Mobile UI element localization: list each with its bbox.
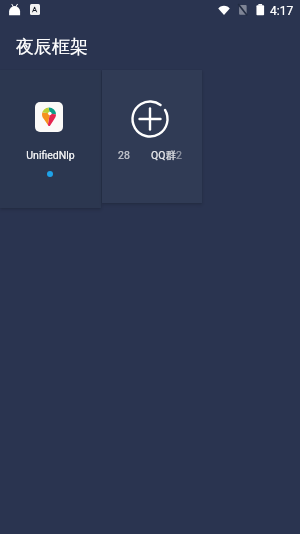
staticText: 夜辰框架 [16, 36, 88, 59]
staticText: 28 [118, 149, 130, 161]
staticText: 4:17 [270, 4, 294, 18]
staticText: A [32, 5, 38, 14]
staticText: 2 [176, 149, 182, 161]
button[interactable]: UnifiedNlp [0, 70, 101, 208]
staticText: QQ群 [151, 149, 176, 162]
button[interactable]: Add [102, 70, 202, 203]
staticText: UnifiedNlp [26, 149, 75, 161]
